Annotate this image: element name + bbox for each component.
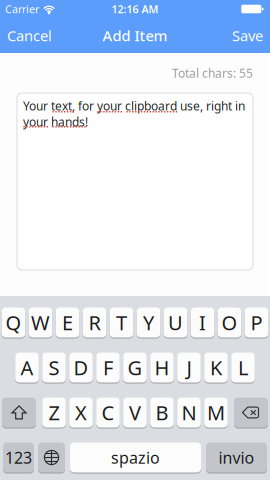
staticText: F bbox=[103, 354, 113, 381]
staticText: R bbox=[88, 309, 100, 336]
staticText: G bbox=[127, 354, 142, 381]
staticText: Z bbox=[48, 399, 59, 426]
button[interactable]: C bbox=[96, 397, 120, 428]
staticText: T bbox=[116, 309, 127, 336]
button[interactable]: G bbox=[123, 352, 147, 383]
button[interactable]: X bbox=[69, 397, 93, 428]
button[interactable]: invio bbox=[206, 442, 267, 473]
button[interactable]: spazio bbox=[70, 442, 201, 473]
staticText: W bbox=[31, 309, 50, 336]
staticText: O bbox=[221, 309, 237, 336]
button[interactable]: K bbox=[204, 352, 228, 383]
staticText: 123 bbox=[5, 447, 32, 468]
button[interactable]: L bbox=[231, 352, 255, 383]
button[interactable]: U bbox=[164, 307, 187, 338]
button[interactable]: P bbox=[245, 307, 268, 338]
staticText: Q bbox=[5, 309, 21, 336]
button[interactable]: Save bbox=[225, 19, 270, 52]
staticText: D bbox=[73, 354, 88, 381]
staticText: Total chars: 55 bbox=[172, 65, 253, 81]
button[interactable]: Z bbox=[42, 397, 66, 428]
staticText: Add Item bbox=[102, 26, 167, 45]
staticText: 12:16 AM bbox=[111, 2, 158, 16]
staticText: U bbox=[168, 309, 183, 336]
button[interactable]: Delete bbox=[234, 397, 268, 428]
staticText: X bbox=[75, 399, 87, 426]
staticText: S bbox=[48, 354, 59, 381]
staticText: J bbox=[186, 354, 191, 381]
button[interactable]: D bbox=[69, 352, 93, 383]
button[interactable]: I bbox=[191, 307, 214, 338]
button[interactable]: S bbox=[42, 352, 66, 383]
button[interactable]: F bbox=[96, 352, 120, 383]
button[interactable]: H bbox=[150, 352, 174, 383]
staticText: invio bbox=[218, 447, 254, 468]
staticText: Carrier bbox=[5, 2, 39, 16]
staticText: P bbox=[250, 309, 262, 336]
button[interactable]: T bbox=[110, 307, 133, 338]
button[interactable]: Shift bbox=[2, 397, 36, 428]
button[interactable]: N bbox=[177, 397, 201, 428]
button[interactable]: V bbox=[123, 397, 147, 428]
button[interactable]: B bbox=[150, 397, 174, 428]
staticText: C bbox=[101, 399, 114, 426]
staticText: Your text, for your clipboard use, right… bbox=[23, 98, 245, 130]
staticText: Cancel bbox=[7, 26, 52, 45]
button[interactable]: A bbox=[15, 352, 39, 383]
button[interactable]: M bbox=[204, 397, 228, 428]
button[interactable]: Next keyboard bbox=[38, 442, 65, 473]
button[interactable]: E bbox=[56, 307, 79, 338]
staticText: H bbox=[154, 354, 169, 381]
staticText: I bbox=[199, 309, 206, 336]
button[interactable]: J bbox=[177, 352, 201, 383]
button[interactable]: Cancel bbox=[0, 19, 59, 52]
staticText: Y bbox=[143, 309, 154, 336]
button[interactable]: O bbox=[218, 307, 241, 338]
staticText: V bbox=[129, 399, 141, 426]
staticText: N bbox=[181, 399, 196, 426]
staticText: B bbox=[155, 399, 168, 426]
button[interactable]: Numbers bbox=[3, 442, 34, 473]
staticText: Save bbox=[232, 26, 263, 45]
staticText: M bbox=[207, 399, 225, 426]
button[interactable]: Y bbox=[137, 307, 160, 338]
staticText: spazio bbox=[111, 447, 160, 468]
button[interactable]: R bbox=[83, 307, 106, 338]
button[interactable]: W bbox=[29, 307, 52, 338]
staticText: E bbox=[62, 309, 73, 336]
staticText: K bbox=[210, 354, 222, 381]
button[interactable]: Q bbox=[2, 307, 25, 338]
staticText: A bbox=[20, 354, 33, 381]
staticText: L bbox=[238, 354, 248, 381]
